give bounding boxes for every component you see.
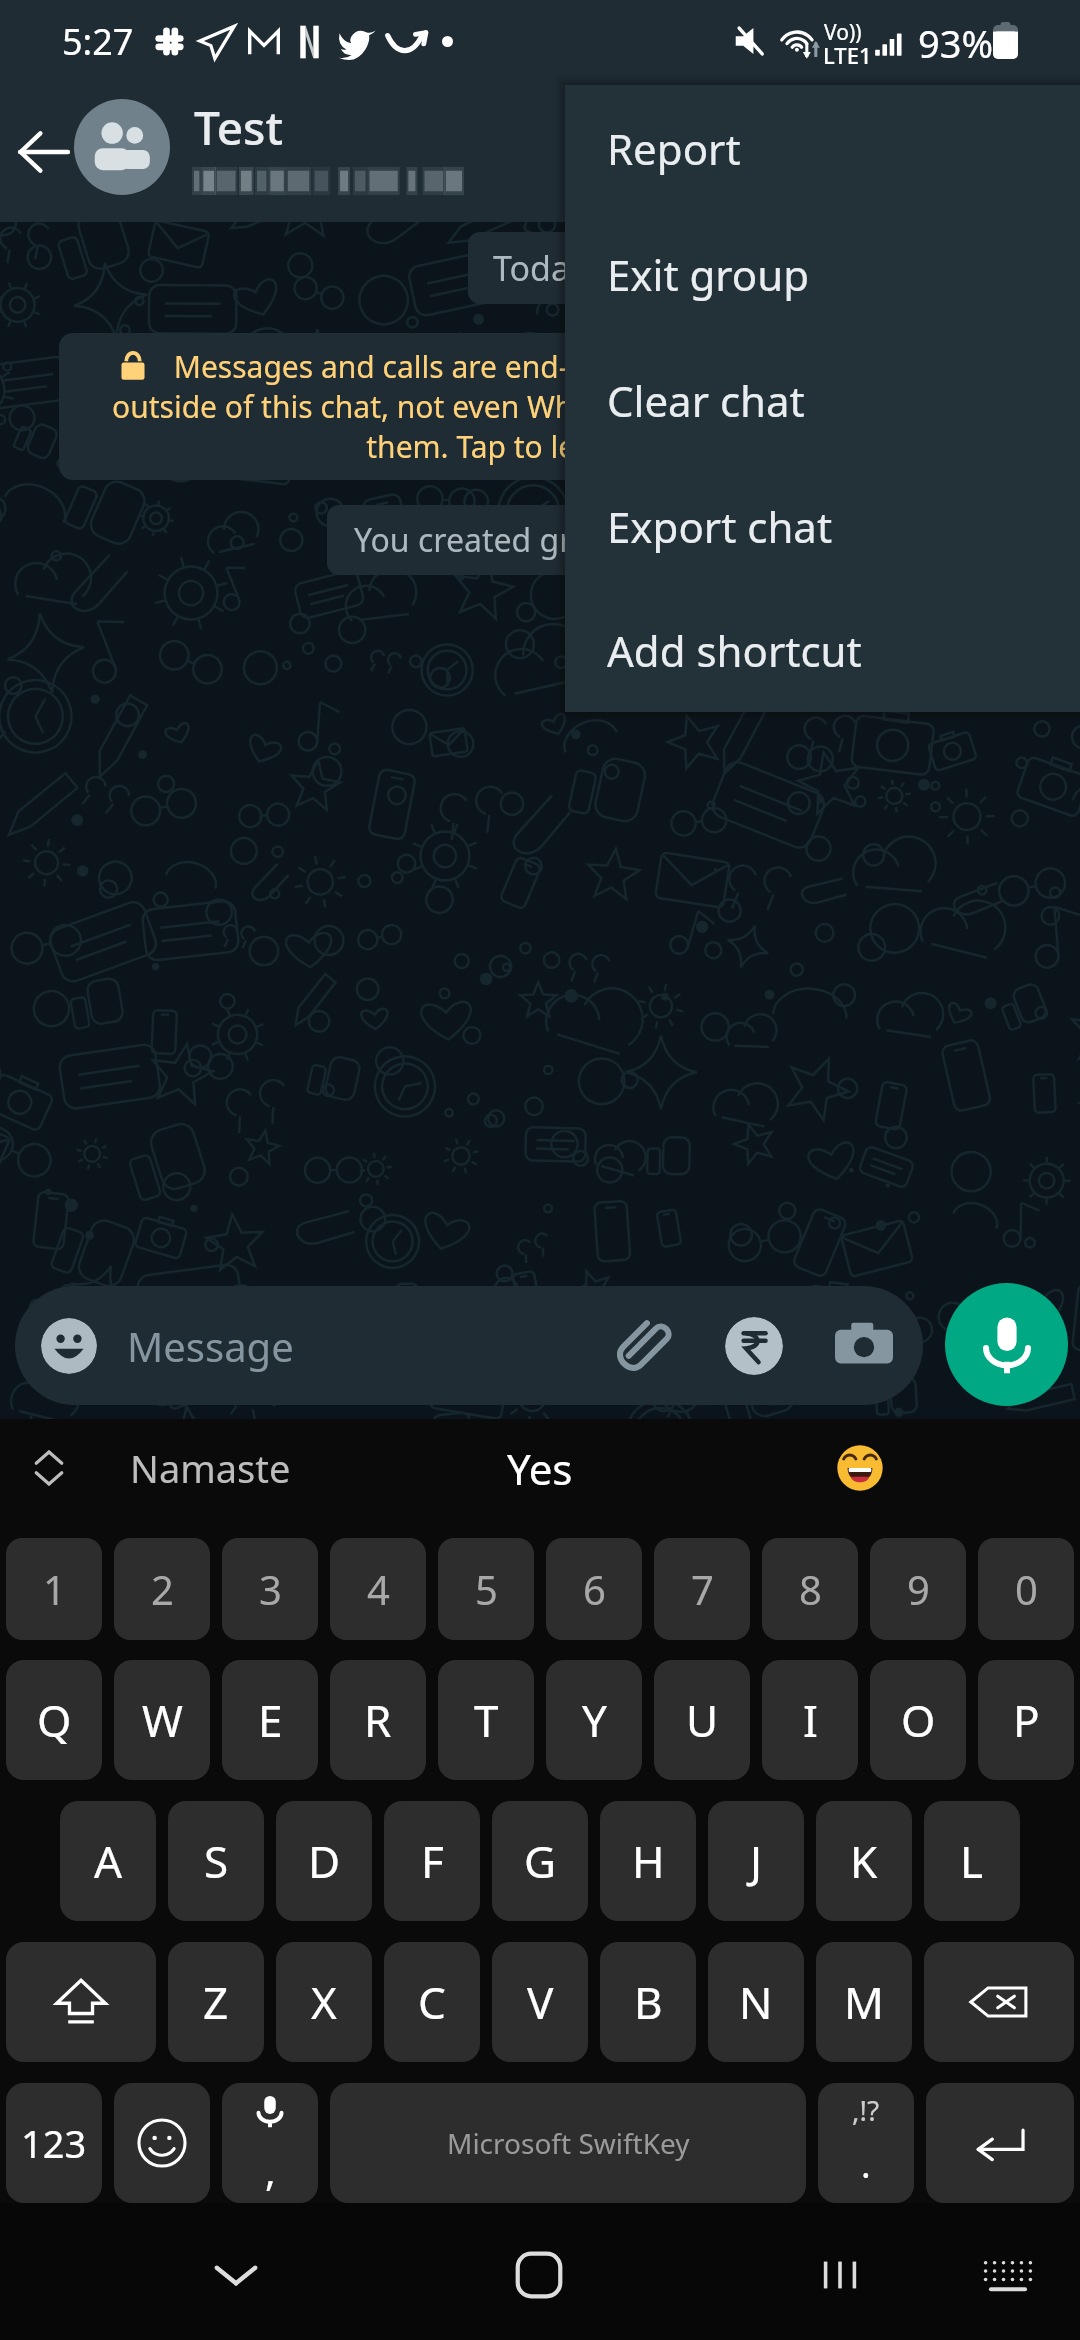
button[interactable]: Clear chat [565,337,1080,463]
button[interactable]: 9 [870,1538,966,1640]
button[interactable]: Q [6,1660,102,1780]
staticText: J [750,1831,763,1891]
staticText: Message [127,1319,294,1373]
button[interactable]: L [924,1801,1020,1921]
staticText: 93% [918,17,994,69]
staticText: , [265,2143,276,2197]
button[interactable]: N [708,1942,804,2062]
button[interactable]: Home [489,2225,589,2325]
button[interactable]: 0 [978,1538,1074,1640]
button[interactable]: Attach [611,1316,671,1376]
button[interactable]: Expand suggestions [18,1437,80,1499]
staticText: C [418,1972,446,2032]
button[interactable]: O [870,1660,966,1780]
button[interactable]: Test [194,96,524,197]
button[interactable]: 123 [6,2083,102,2203]
button[interactable]: K [816,1801,912,1921]
button[interactable]: A [60,1801,156,1921]
button[interactable]: S [168,1801,264,1921]
button[interactable]: I [762,1660,858,1780]
button[interactable]: V [492,1942,588,2062]
staticText: 0 [1015,1562,1038,1616]
button[interactable]: Back [0,82,88,222]
button[interactable]: F [384,1801,480,1921]
button[interactable]: You created group "Test" [327,505,754,575]
staticText: 6 [583,1562,606,1616]
button[interactable]: Microsoft SwiftKey [330,2083,806,2203]
staticText: U [686,1690,719,1750]
button[interactable]: Today [468,232,613,304]
staticText: 5:27 [62,17,134,66]
button[interactable]: Export chat [565,463,1080,589]
button[interactable]: Hide keyboard [186,2225,286,2325]
button[interactable]: 2 [114,1538,210,1640]
button[interactable]: 5 [438,1538,534,1640]
staticText: 123 [21,2117,87,2169]
staticText: Clear chat [607,372,805,429]
button[interactable]: Payment [725,1317,783,1375]
staticText: LTE1 [823,40,872,70]
staticText: X [311,1972,337,2032]
button[interactable]: Report [565,85,1080,211]
button[interactable]: W [114,1660,210,1780]
button[interactable]: Namaste [130,1442,291,1494]
button[interactable]: U [654,1660,750,1780]
button[interactable]: Emoji [41,1318,97,1374]
staticText: A [94,1831,123,1891]
button[interactable]: T [438,1660,534,1780]
button[interactable]: C [384,1942,480,2062]
button[interactable]: J [708,1801,804,1921]
button[interactable]: D [276,1801,372,1921]
staticText: Report [607,120,741,177]
button[interactable]: Group photo [74,99,170,195]
button[interactable]: G [492,1801,588,1921]
staticText: 8 [799,1562,822,1616]
staticText: 2 [151,1562,174,1616]
staticText: Vo)) [824,18,862,47]
button[interactable]: 3 [222,1538,318,1640]
button[interactable]: Keyboard switcher [958,2225,1058,2325]
button[interactable]: Period and symbols [818,2083,914,2203]
button[interactable]: 1 [6,1538,102,1640]
button[interactable]: Laughing emoji [830,1438,890,1498]
staticText: 4 [367,1562,390,1616]
staticText: K [850,1831,878,1891]
staticText: Microsoft SwiftKey [447,2124,690,2162]
button[interactable]: 6 [546,1538,642,1640]
button[interactable]: M [816,1942,912,2062]
button[interactable]: Emoji [114,2083,210,2203]
staticText: 1 [43,1562,66,1616]
staticText: E [258,1690,283,1750]
button[interactable]: Enter [926,2083,1074,2203]
staticText: You created group "Test" [354,518,727,562]
button[interactable]: Voice message [945,1283,1068,1406]
staticText: Exit group [607,246,810,303]
button[interactable]: Backspace [924,1942,1074,2062]
button[interactable]: Camera [835,1317,893,1375]
button[interactable]: E [222,1660,318,1780]
button[interactable]: Z [168,1942,264,2062]
staticText: H [632,1831,665,1891]
button[interactable]: Yes [507,1440,573,1497]
button[interactable]: X [276,1942,372,2062]
button[interactable]: Y [546,1660,642,1780]
button[interactable]: 4 [330,1538,426,1640]
button[interactable]: Recents [790,2225,890,2325]
button[interactable]: 7 [654,1538,750,1640]
button[interactable]: H [600,1801,696,1921]
button[interactable]: Messages and calls are end-to-end encryp… [59,333,1021,480]
staticText: 9 [907,1562,930,1616]
button[interactable]: Shift [6,1942,156,2062]
staticText: 7 [691,1562,714,1616]
staticText: 5 [475,1562,498,1616]
staticText: Add shortcut [607,622,862,679]
button[interactable]: Add shortcut [565,589,1080,712]
button[interactable]: Emoji [15,1286,923,1405]
button[interactable]: 8 [762,1538,858,1640]
button[interactable]: P [978,1660,1074,1780]
button[interactable]: Exit group [565,211,1080,337]
button[interactable]: R [330,1660,426,1780]
button[interactable]: Comma, voice input [222,2083,318,2203]
staticText: ,!? [852,2091,880,2129]
button[interactable]: B [600,1942,696,2062]
